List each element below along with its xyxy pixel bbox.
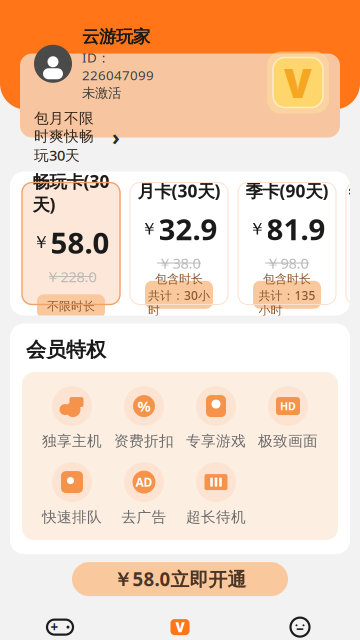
staticText: ￥228.0	[45, 267, 96, 286]
button[interactable]: ￥58.0立即开通	[72, 562, 288, 596]
staticText: 不限时长	[47, 299, 95, 314]
button[interactable]: +	[0, 610, 120, 640]
staticText: 共计：30小时	[148, 287, 210, 318]
button[interactable]: 我的	[240, 610, 360, 640]
staticText: +	[50, 618, 58, 636]
staticText: 畅玩卡(30天)	[32, 170, 109, 216]
staticText: ￥	[140, 218, 157, 239]
staticText: 81.9	[266, 209, 325, 248]
staticText: HD	[280, 399, 296, 413]
button[interactable]: HD	[252, 386, 324, 450]
staticText: 年卡(365天)	[348, 179, 360, 202]
staticText: 包含时长	[155, 272, 203, 286]
staticText: 月卡(30天)	[137, 179, 220, 202]
staticText: AD	[135, 474, 152, 490]
button[interactable]: 月卡(30天)	[130, 182, 228, 304]
staticText: 58.0	[50, 223, 109, 262]
staticText: ￥	[248, 218, 265, 239]
staticText: 极致画面	[258, 432, 318, 450]
staticText: ￥38.0	[157, 253, 200, 273]
button[interactable]: 独享主机	[36, 386, 108, 450]
staticText: 包月不限时爽快畅玩30天	[34, 109, 94, 165]
staticText: 季卡(90天)	[245, 179, 328, 202]
staticText: V	[284, 56, 312, 109]
staticText: 云游玩家	[82, 26, 150, 47]
button[interactable]: 畅玩卡(30天)	[22, 182, 120, 304]
staticText: 未激活	[82, 85, 121, 101]
staticText: 独享主机	[42, 432, 102, 450]
staticText: 32.9	[158, 209, 217, 248]
staticText: 专享游戏	[186, 432, 246, 450]
staticText: ￥58.0立即开通	[113, 567, 246, 591]
staticText: %	[137, 396, 150, 416]
staticText: ￥98.0	[265, 253, 308, 273]
staticText: 包含时长	[263, 272, 311, 286]
staticText: 超长待机	[186, 508, 246, 526]
button[interactable]: 专享游戏	[180, 386, 252, 450]
button[interactable]: V	[120, 610, 240, 640]
button[interactable]: 年卡(365天)	[346, 182, 360, 304]
staticText: ID：226047099	[82, 48, 154, 84]
button[interactable]: %	[108, 386, 180, 450]
staticText: V	[175, 618, 184, 636]
staticText: ›	[112, 123, 120, 151]
staticText: ￥	[32, 232, 49, 253]
button[interactable]: 季卡(90天)	[238, 182, 336, 304]
button[interactable]: 快速排队	[36, 462, 108, 526]
staticText: 资费折扣	[114, 432, 174, 450]
button[interactable]: 超长待机	[180, 462, 252, 526]
button[interactable]: AD	[108, 462, 180, 526]
staticText: 快速排队	[42, 508, 102, 526]
staticText: 会员特权	[26, 337, 106, 362]
staticText: 去广告	[121, 508, 166, 526]
button[interactable]: 包月不限时爽快畅玩30天	[34, 109, 180, 165]
staticText: 共计：135小时	[258, 287, 315, 318]
